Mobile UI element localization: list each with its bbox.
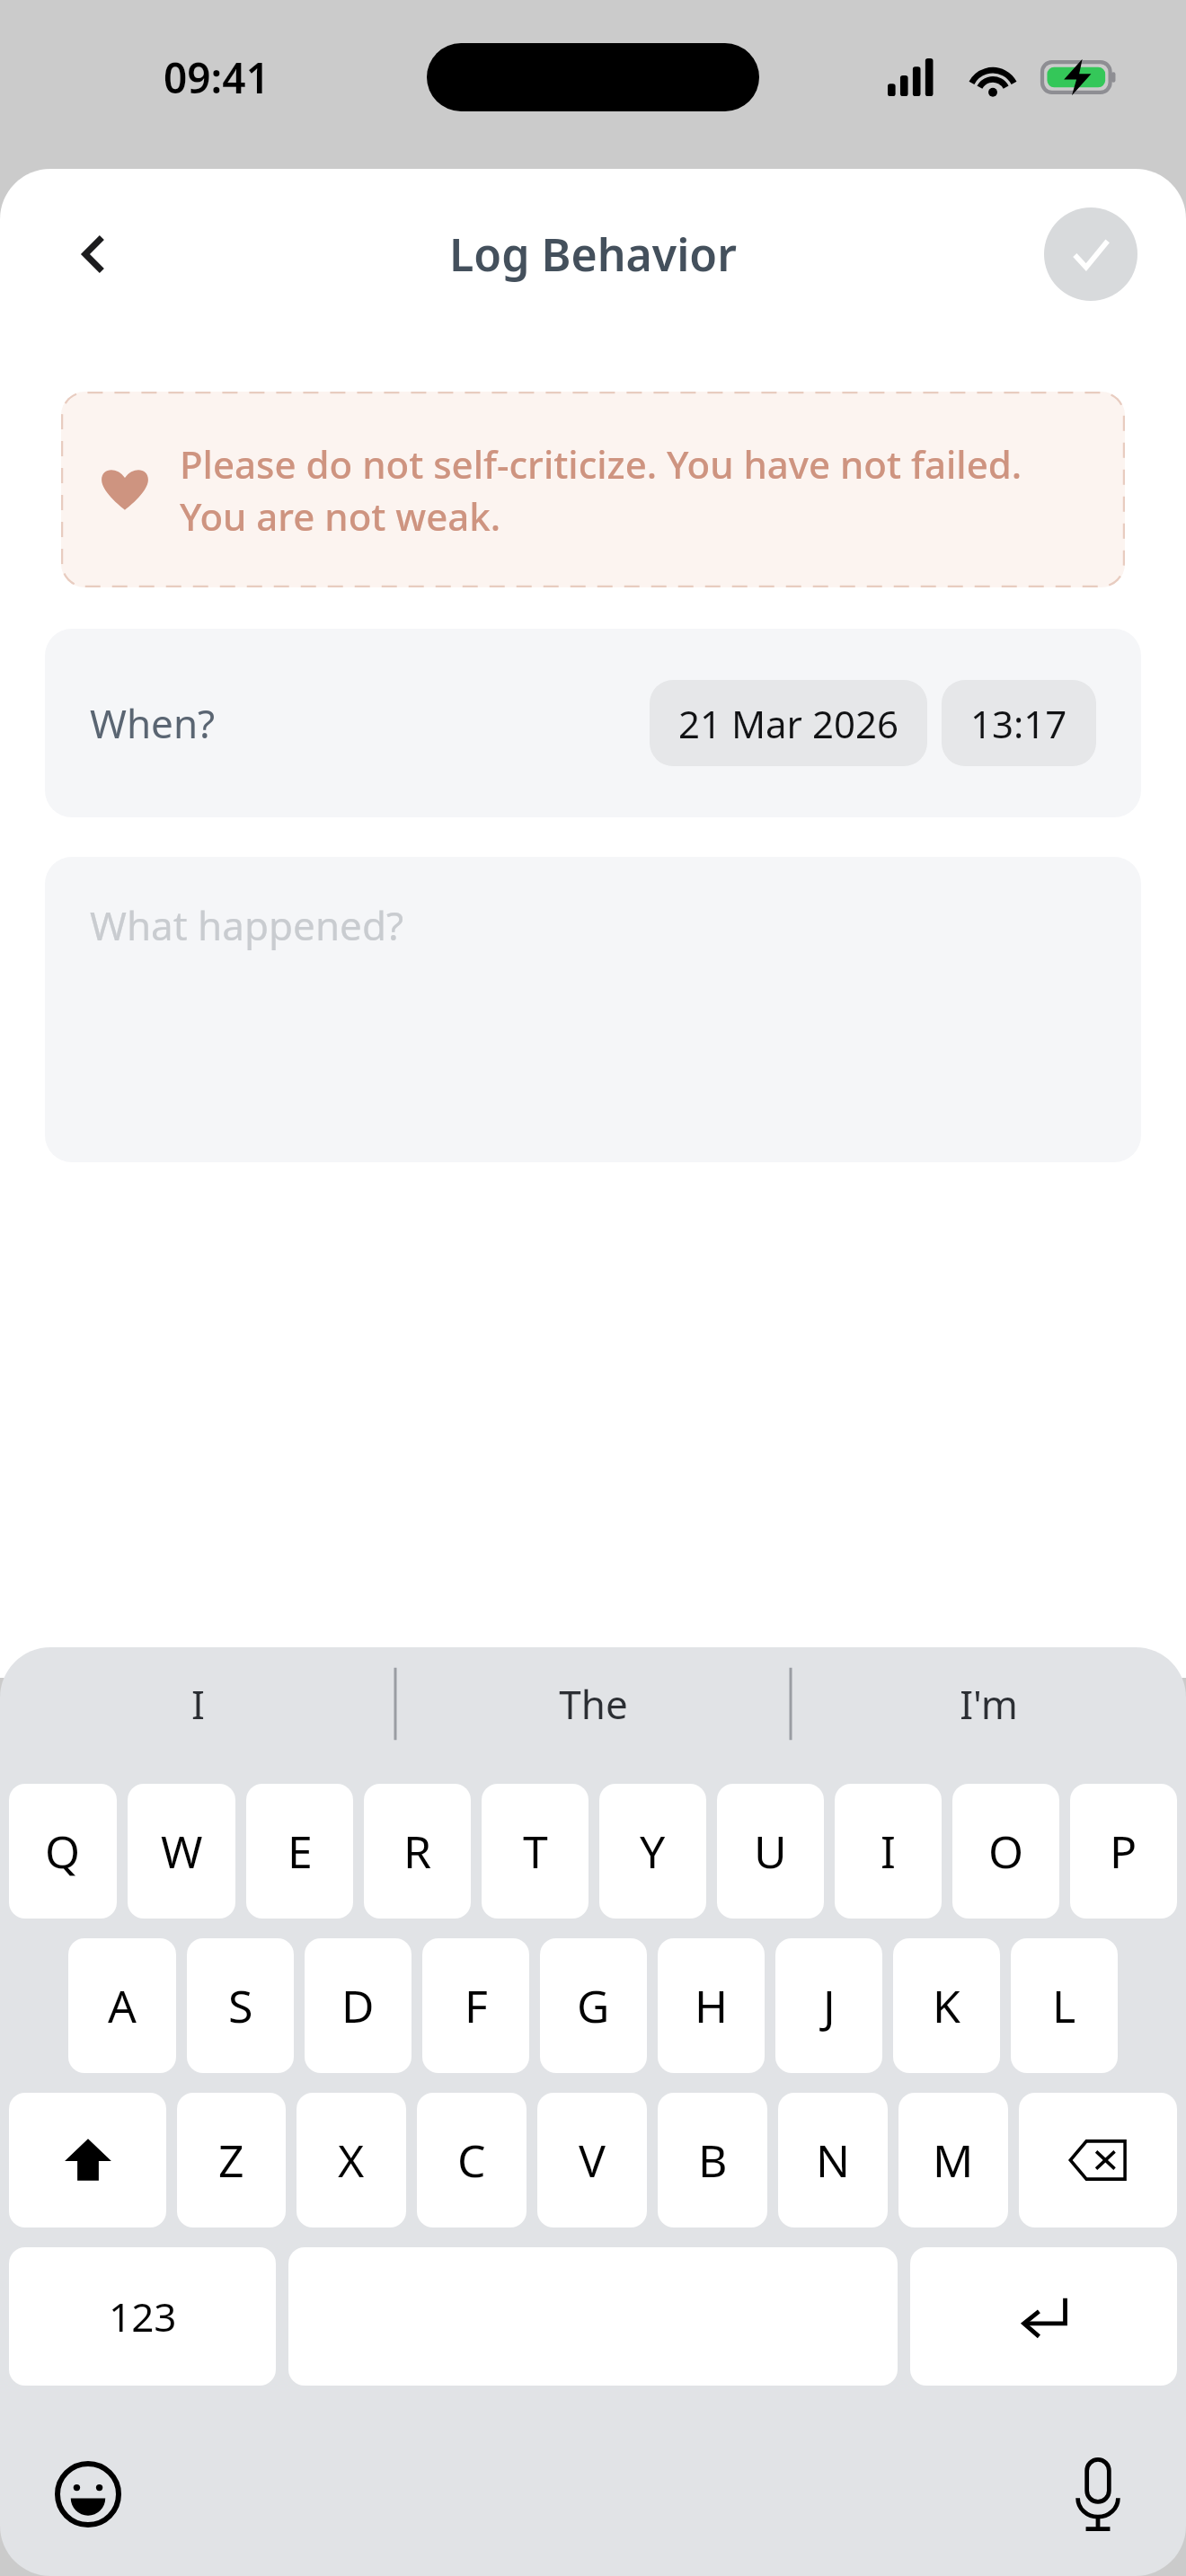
button[interactable]: A [68, 1938, 176, 2073]
button[interactable]: H [658, 1938, 765, 2073]
staticText: 123 [109, 2289, 177, 2343]
button[interactable]: X [296, 2093, 406, 2228]
staticText: A [108, 1975, 137, 2036]
staticText: T [523, 1821, 548, 1882]
staticText: 21 Mar 2026 [678, 698, 898, 749]
staticText: H [695, 1975, 729, 2036]
button[interactable]: N [778, 2093, 888, 2228]
staticText: Log Behavior [449, 224, 737, 285]
button[interactable]: 123 [9, 2247, 276, 2386]
staticText: L [1052, 1975, 1076, 2036]
button[interactable]: Return [910, 2247, 1177, 2386]
staticText: E [288, 1821, 313, 1882]
button[interactable]: I'm [791, 1647, 1186, 1760]
button[interactable]: Shift [9, 2093, 166, 2228]
button[interactable]: Emoji [47, 2453, 129, 2536]
button[interactable]: G [540, 1938, 647, 2073]
button[interactable]: F [422, 1938, 529, 2073]
button[interactable]: When? [90, 629, 1096, 817]
button[interactable]: 13:17 [942, 680, 1096, 766]
staticText: D [341, 1975, 375, 2036]
button[interactable]: M [898, 2093, 1008, 2228]
staticText: M [933, 2130, 974, 2191]
button[interactable]: U [717, 1784, 824, 1919]
button[interactable]: Back [49, 207, 142, 301]
button[interactable]: 21 Mar 2026 [650, 680, 927, 766]
button[interactable]: E [246, 1784, 353, 1919]
button[interactable]: K [893, 1938, 1000, 2073]
staticText: R [403, 1821, 432, 1882]
button[interactable]: Y [599, 1784, 706, 1919]
staticText: K [933, 1975, 960, 2036]
staticText: 13:17 [970, 698, 1067, 749]
staticText: 09:41 [164, 49, 270, 106]
button[interactable]: I [835, 1784, 942, 1919]
staticText: N [816, 2130, 850, 2191]
button[interactable]: Save [1044, 207, 1137, 301]
button[interactable]: Z [177, 2093, 286, 2228]
button[interactable]: L [1011, 1938, 1118, 2073]
staticText: Z [218, 2130, 244, 2191]
button[interactable]: O [952, 1784, 1059, 1919]
staticText: F [465, 1975, 488, 2036]
staticText: J [823, 1975, 836, 2036]
button[interactable]: I [0, 1647, 395, 1760]
staticText: I [881, 1821, 896, 1882]
staticText: C [457, 2130, 486, 2191]
button[interactable]: V [537, 2093, 647, 2228]
button[interactable]: W [128, 1784, 235, 1919]
staticText: B [698, 2130, 728, 2191]
staticText: G [577, 1975, 610, 2036]
button[interactable]: P [1070, 1784, 1177, 1919]
staticText: Y [640, 1821, 666, 1882]
button[interactable]: Please do not self-criticize. You have n… [61, 392, 1125, 587]
staticText: X [338, 2130, 365, 2191]
staticText: Please do not self-criticize. You have n… [180, 438, 1093, 542]
button[interactable]: The [395, 1647, 791, 1760]
button[interactable]: S [187, 1938, 294, 2073]
button[interactable]: C [417, 2093, 527, 2228]
button[interactable]: B [658, 2093, 767, 2228]
button[interactable]: Backspace [1019, 2093, 1177, 2228]
staticText: I [191, 1677, 205, 1731]
button[interactable]: Dictate [1057, 2453, 1139, 2536]
button[interactable]: T [482, 1784, 589, 1919]
staticText: S [228, 1975, 253, 2036]
button[interactable]: Q [9, 1784, 117, 1919]
staticText: When? [90, 696, 216, 750]
button[interactable]: J [775, 1938, 882, 2073]
staticText: P [1110, 1821, 1137, 1882]
button[interactable]: R [364, 1784, 471, 1919]
staticText: V [579, 2130, 606, 2191]
staticText: W [161, 1821, 203, 1882]
button[interactable]: What happened? [45, 857, 1141, 1162]
staticText: O [988, 1821, 1024, 1882]
staticText: What happened? [90, 898, 404, 952]
staticText: The [559, 1677, 628, 1731]
staticText: I'm [960, 1677, 1018, 1731]
staticText: Q [45, 1821, 81, 1882]
button[interactable]: D [305, 1938, 412, 2073]
button[interactable]: Space [288, 2247, 898, 2386]
staticText: U [754, 1821, 787, 1882]
